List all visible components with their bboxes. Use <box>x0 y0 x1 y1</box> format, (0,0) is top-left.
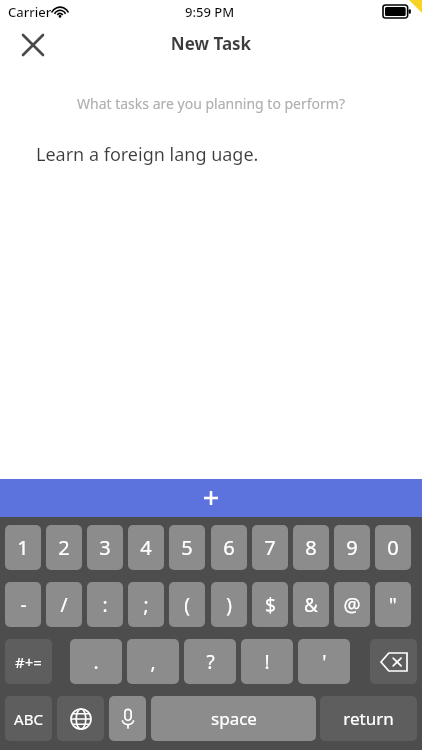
button[interactable]: & <box>293 582 329 627</box>
staticText: New Task <box>0 32 422 55</box>
button[interactable]: 6 <box>211 525 247 570</box>
staticText: 9:59 PM <box>185 3 235 21</box>
button[interactable]: 5 <box>169 525 205 570</box>
staticText: 4 <box>140 534 152 561</box>
button[interactable]: Close <box>14 26 52 64</box>
button[interactable]: " <box>375 582 411 627</box>
staticText: - <box>20 592 27 618</box>
staticText: ! <box>264 649 270 675</box>
button[interactable]: 3 <box>87 525 123 570</box>
staticText: 5 <box>181 534 193 561</box>
button[interactable]: 0 <box>375 525 411 570</box>
staticText: Carrier <box>8 3 52 21</box>
staticText: / <box>60 592 68 618</box>
staticText: $ <box>265 592 276 618</box>
button[interactable]: 7 <box>252 525 288 570</box>
staticText: ; <box>143 592 149 618</box>
staticText: space <box>211 707 257 730</box>
staticText: 1 <box>17 534 29 561</box>
staticText: 9 <box>346 534 358 561</box>
staticText: : <box>102 592 108 618</box>
button[interactable]: Add <box>0 479 422 517</box>
staticText: return <box>343 707 394 730</box>
staticText: 8 <box>305 534 317 561</box>
staticText: 3 <box>99 534 111 561</box>
button[interactable]: 4 <box>128 525 164 570</box>
button[interactable]: #+= <box>5 639 52 684</box>
button[interactable]: 9 <box>334 525 370 570</box>
button[interactable]: : <box>87 582 123 627</box>
button[interactable]: @ <box>334 582 370 627</box>
staticText: 6 <box>223 534 235 561</box>
staticText: 0 <box>387 534 399 561</box>
staticText: What tasks are you planning to perform? <box>0 94 422 113</box>
button[interactable]: 1 <box>5 525 41 570</box>
button[interactable]: 2 <box>46 525 82 570</box>
button[interactable]: ) <box>211 582 247 627</box>
button[interactable]: ' <box>298 639 350 684</box>
button[interactable]: Learn a foreign lang uage. <box>36 142 259 167</box>
staticText: ABC <box>14 709 43 729</box>
button[interactable]: Change keyboard <box>57 696 104 741</box>
button[interactable]: ( <box>169 582 205 627</box>
staticText: @ <box>343 592 361 618</box>
staticText: ) <box>226 592 232 618</box>
button[interactable]: / <box>46 582 82 627</box>
button[interactable]: space <box>151 696 316 741</box>
button[interactable]: ; <box>128 582 164 627</box>
button[interactable]: $ <box>252 582 288 627</box>
staticText: #+= <box>15 652 42 672</box>
button[interactable]: 8 <box>293 525 329 570</box>
button[interactable]: ? <box>184 639 236 684</box>
staticText: . <box>93 649 99 675</box>
staticText: ' <box>322 649 327 675</box>
button[interactable]: Dictate <box>109 696 146 741</box>
button[interactable]: . <box>70 639 122 684</box>
button[interactable]: , <box>127 639 179 684</box>
staticText: , <box>150 649 156 675</box>
button[interactable]: Backspace <box>370 639 417 684</box>
button[interactable]: - <box>5 582 41 627</box>
staticText: ? <box>206 649 215 675</box>
staticText: 7 <box>264 534 276 561</box>
button[interactable]: ! <box>241 639 293 684</box>
staticText: 2 <box>58 534 70 561</box>
button[interactable]: return <box>320 696 417 741</box>
staticText: " <box>389 592 397 618</box>
staticText: & <box>304 592 318 618</box>
button[interactable]: ABC <box>5 696 52 741</box>
staticText: ( <box>184 592 190 618</box>
